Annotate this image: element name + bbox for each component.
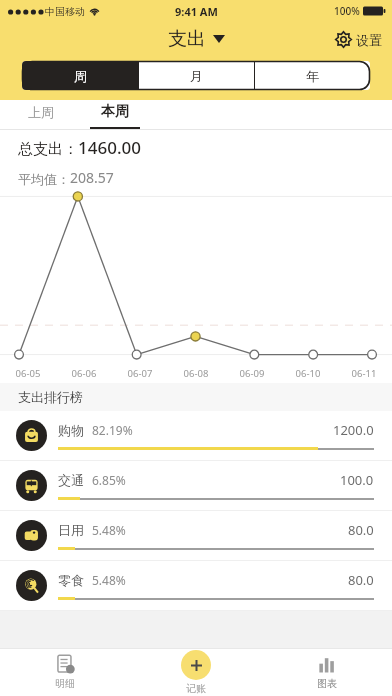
button[interactable]: 支出 (168, 27, 225, 51)
staticText: 100% (334, 4, 360, 18)
staticText: 06-06 (56, 367, 112, 380)
staticText: 上周 (28, 104, 54, 120)
button[interactable]: 日用 (0, 511, 392, 561)
staticText: 80.0 (348, 571, 374, 589)
staticText: 5.48% (92, 522, 126, 538)
staticText: 82.19% (92, 422, 133, 438)
button[interactable]: 记账 (130, 648, 261, 696)
other: 记账 (181, 650, 211, 680)
staticText: 6.85% (92, 472, 126, 488)
button[interactable]: 本周 (90, 100, 140, 130)
button[interactable]: 图表 (261, 648, 392, 696)
button[interactable]: 月 (139, 61, 254, 90)
staticText: 208.57 (70, 168, 114, 187)
staticText: 设置 (356, 32, 382, 48)
staticText: 06-05 (0, 367, 56, 380)
staticText: 9:41 AM (175, 4, 218, 19)
staticText: 图表 (317, 677, 337, 690)
staticText: 月 (190, 68, 203, 84)
button[interactable]: 零食 (0, 561, 392, 611)
button[interactable]: 明细 (0, 648, 130, 696)
button[interactable]: 周 (22, 61, 138, 90)
staticText: 06-08 (168, 367, 224, 380)
button[interactable]: 设置 (335, 31, 382, 48)
staticText: 明细 (55, 677, 75, 690)
button[interactable]: 交通 (0, 461, 392, 511)
staticText: 中国移动 (45, 5, 85, 18)
staticText: 支出排行榜 (18, 389, 83, 405)
button[interactable]: 上周 (18, 100, 64, 124)
staticText: 总支出： (18, 140, 78, 159)
button[interactable]: 年 (255, 61, 370, 90)
staticText: 记账 (186, 682, 206, 695)
staticText: 周 (74, 68, 87, 84)
staticText: 1460.00 (78, 136, 141, 159)
staticText: 06-10 (280, 367, 336, 380)
staticText: 日用 (58, 522, 84, 538)
staticText: 本周 (101, 103, 129, 121)
staticText: 交通 (58, 472, 84, 488)
staticText: 06-09 (224, 367, 280, 380)
staticText: 购物 (58, 422, 84, 438)
staticText: 100.0 (340, 471, 374, 489)
staticText: 年 (306, 68, 319, 84)
button[interactable]: 购物 (0, 411, 392, 461)
staticText: 06-11 (336, 367, 392, 380)
staticText: 5.48% (92, 572, 126, 588)
staticText: 06-07 (112, 367, 168, 380)
staticText: 支出 (168, 27, 206, 51)
other: 图表 (316, 654, 337, 675)
staticText: 零食 (58, 572, 84, 588)
other: 明细 (55, 654, 76, 675)
staticText: 80.0 (348, 521, 374, 539)
staticText: 1200.0 (333, 421, 374, 439)
staticText: 平均值： (18, 171, 70, 187)
